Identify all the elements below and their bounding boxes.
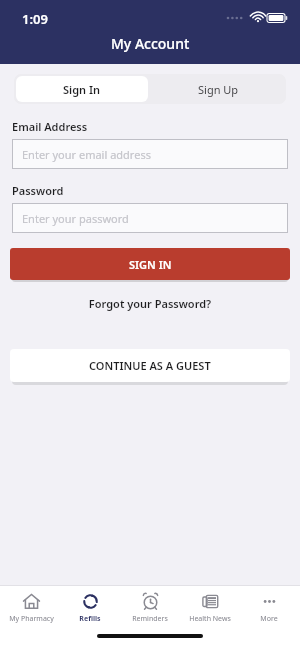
staticText: Health News [189,614,231,624]
staticText: Email Address [12,119,88,134]
button[interactable]: My Pharmacy [2,592,60,624]
staticText: Reminders [132,614,168,624]
staticText: 1:09 [22,10,48,28]
button[interactable]: More [240,592,298,624]
staticText: Sign In [63,82,101,97]
button[interactable]: Enter your email address [12,139,288,169]
staticText: CONTINUE AS A GUEST [89,358,211,373]
staticText: My Pharmacy [9,614,54,624]
button[interactable]: SIGN IN [10,248,290,280]
button[interactable]: Sign Up [150,74,286,104]
staticText: Refills [79,614,101,624]
button[interactable]: Sign In [16,76,148,102]
button[interactable]: Reminders [121,592,179,624]
button[interactable]: Refills [61,592,119,624]
staticText: SIGN IN [129,257,172,272]
staticText: Enter your email address [22,147,151,162]
button[interactable]: CONTINUE AS A GUEST [10,349,290,382]
staticText: More [260,614,278,624]
staticText: My Account [111,34,190,53]
button[interactable]: Forgot your Password? [0,296,300,311]
button[interactable]: Enter your password [12,203,288,233]
staticText: Enter your password [22,211,129,226]
button[interactable]: Health News [181,592,239,624]
staticText: Sign Up [198,82,239,97]
staticText: Password [12,183,64,198]
